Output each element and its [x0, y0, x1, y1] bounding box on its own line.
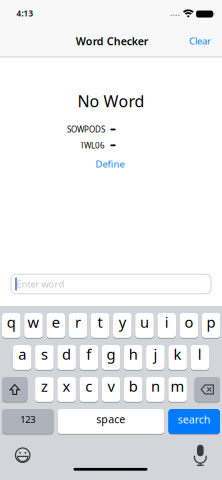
- button[interactable]: n: [146, 376, 165, 402]
- button[interactable]: c: [79, 376, 98, 402]
- staticText: f: [86, 344, 91, 364]
- button[interactable]: x: [57, 376, 76, 402]
- button[interactable]: h: [124, 344, 142, 370]
- button[interactable]: Delete: [195, 376, 220, 402]
- button[interactable]: l: [190, 344, 209, 370]
- staticText: a: [18, 344, 26, 364]
- staticText: e: [52, 312, 60, 332]
- staticText: k: [174, 344, 182, 364]
- button[interactable]: s: [35, 344, 54, 370]
- button[interactable]: Emoji: [15, 447, 30, 463]
- button[interactable]: t: [91, 312, 109, 338]
- staticText: Define: [95, 158, 124, 170]
- button[interactable]: Define: [95, 158, 124, 170]
- staticText: Enter word: [16, 278, 64, 290]
- button[interactable]: a: [13, 344, 31, 370]
- button[interactable]: e: [46, 312, 65, 338]
- staticText: r: [75, 312, 81, 332]
- button[interactable]: r: [69, 312, 87, 338]
- button[interactable]: Shift: [2, 376, 27, 402]
- staticText: 4:13: [16, 8, 33, 19]
- button[interactable]: y: [113, 312, 132, 338]
- staticText: No Word: [77, 90, 144, 112]
- button[interactable]: d: [57, 344, 76, 370]
- staticText: m: [171, 376, 185, 396]
- button[interactable]: w: [24, 312, 43, 338]
- button[interactable]: space: [58, 408, 164, 434]
- button[interactable]: q: [2, 312, 21, 338]
- button[interactable]: z: [35, 376, 54, 402]
- button[interactable]: Dictation: [193, 444, 207, 466]
- button[interactable]: b: [124, 376, 142, 402]
- button[interactable]: Clear: [189, 35, 211, 47]
- staticText: o: [184, 312, 193, 332]
- staticText: z: [41, 376, 48, 396]
- button[interactable]: k: [168, 344, 187, 370]
- staticText: search: [178, 412, 211, 427]
- button[interactable]: g: [102, 344, 120, 370]
- button[interactable]: o: [180, 312, 198, 338]
- staticText: Clear: [189, 35, 211, 47]
- staticText: space: [96, 412, 125, 426]
- staticText: t: [98, 312, 103, 332]
- staticText: w: [27, 312, 39, 332]
- staticText: c: [85, 376, 92, 396]
- staticText: l: [198, 344, 202, 364]
- staticText: b: [129, 376, 138, 396]
- staticText: i: [165, 312, 169, 332]
- staticText: n: [151, 376, 160, 396]
- button[interactable]: p: [202, 312, 220, 338]
- button[interactable]: v: [102, 376, 120, 402]
- staticText: x: [63, 376, 71, 396]
- staticText: Word Checker: [76, 34, 149, 48]
- button[interactable]: m: [168, 376, 187, 402]
- staticText: s: [41, 344, 48, 364]
- staticText: d: [62, 344, 71, 364]
- staticText: g: [106, 344, 115, 364]
- button[interactable]: search: [168, 408, 220, 434]
- button[interactable]: f: [79, 344, 98, 370]
- button[interactable]: j: [146, 344, 165, 370]
- staticText: h: [129, 344, 138, 364]
- button[interactable]: u: [135, 312, 154, 338]
- staticText: q: [7, 312, 16, 332]
- staticText: v: [107, 376, 114, 396]
- staticText: SOWPODS: [67, 124, 105, 135]
- button[interactable]: Enter word: [11, 274, 211, 294]
- button[interactable]: i: [157, 312, 176, 338]
- staticText: p: [207, 312, 216, 332]
- staticText: u: [140, 312, 149, 332]
- staticText: j: [153, 344, 157, 364]
- staticText: TWL06: [80, 140, 105, 151]
- staticText: y: [119, 312, 126, 332]
- staticText: 123: [20, 413, 35, 426]
- button[interactable]: 123: [2, 408, 53, 434]
